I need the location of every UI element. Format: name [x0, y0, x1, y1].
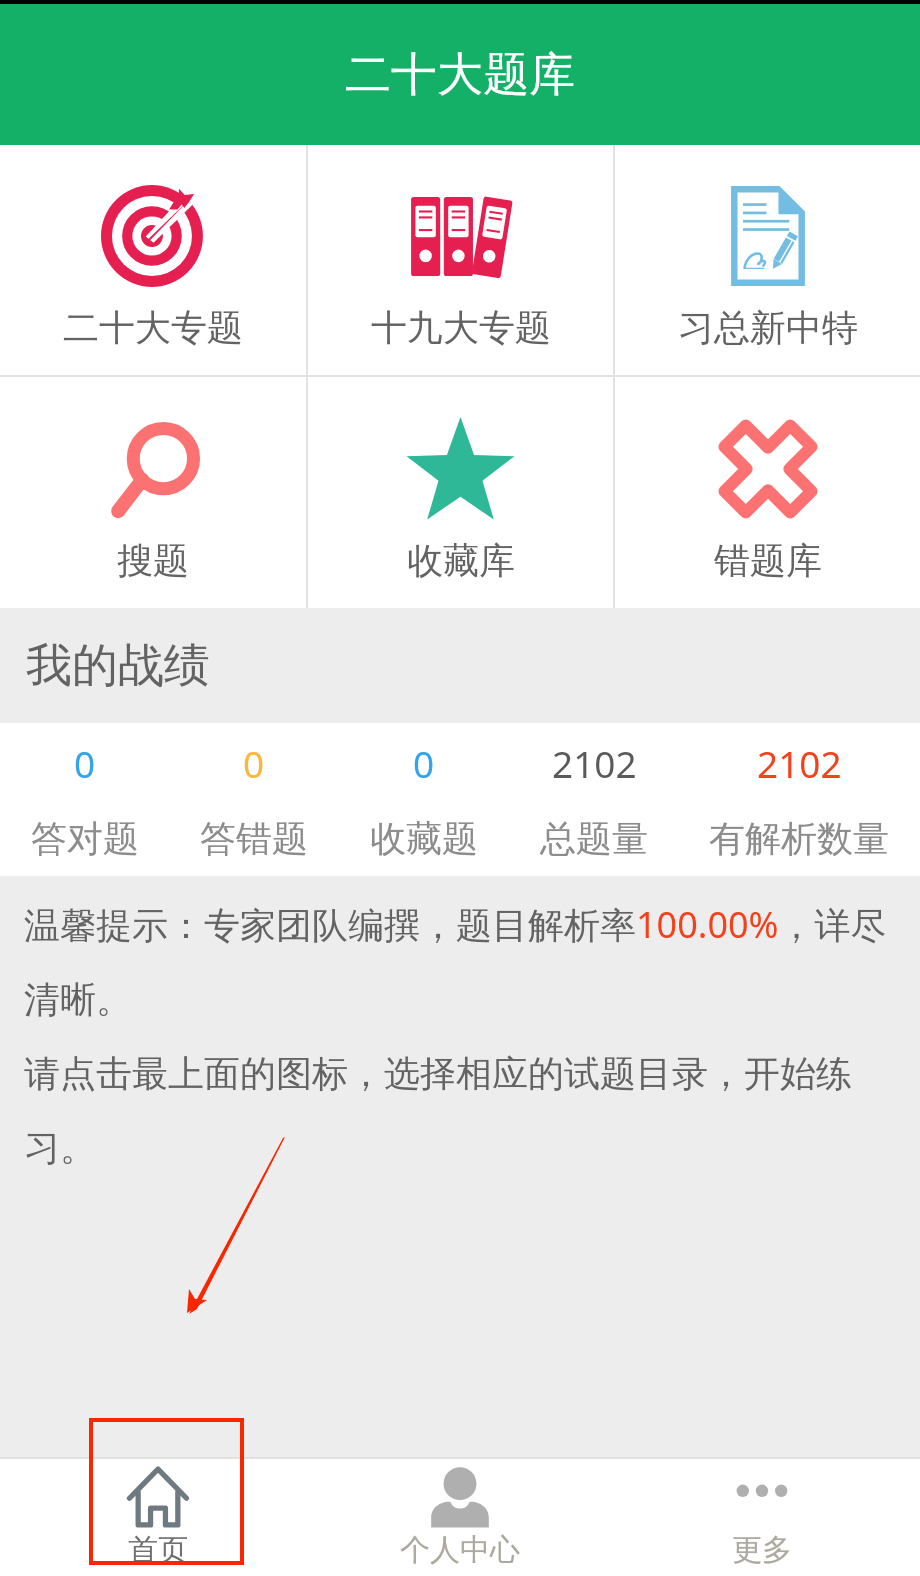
staticText: 温馨提示：专家团队编撰，题目解析率100.00%，详尽清晰。 请点击最上面的图标… [24, 900, 906, 1171]
staticText: 0 [74, 738, 96, 788]
staticText: 答对题 [31, 816, 139, 861]
button[interactable]: 更多 [608, 1459, 915, 1576]
button[interactable]: 0 [370, 723, 478, 876]
staticText: 更多 [732, 1531, 792, 1569]
staticText: 0 [413, 738, 435, 788]
button[interactable]: 搜题 [0, 377, 306, 608]
other: 更多 [731, 1466, 793, 1528]
staticText: 0 [243, 738, 265, 788]
staticText: 总题量 [540, 816, 648, 861]
button[interactable]: 习总新中特 [615, 145, 920, 375]
button[interactable]: 2102 [709, 723, 889, 876]
staticText: 习总新中特 [678, 305, 858, 350]
other: 首页 [127, 1466, 189, 1528]
button[interactable]: 错题库 [615, 377, 920, 608]
staticText: 有解析数量 [709, 816, 889, 861]
button[interactable]: 十九大专题 [308, 145, 613, 375]
staticText: 个人中心 [400, 1531, 520, 1569]
staticText: 搜题 [117, 538, 189, 583]
staticText: 2102 [552, 738, 637, 788]
other: 个人中心 [429, 1466, 491, 1528]
staticText: 答错题 [200, 816, 308, 861]
button[interactable]: 2102 [540, 723, 648, 876]
staticText: 收藏题 [370, 816, 478, 861]
button[interactable]: 0 [31, 723, 139, 876]
staticText: 收藏库 [407, 538, 515, 583]
staticText: 二十大专题 [63, 305, 243, 350]
button[interactable]: 首页 [5, 1459, 311, 1576]
staticText: 十九大专题 [371, 305, 551, 350]
staticText: 首页 [128, 1531, 188, 1569]
button[interactable]: 二十大专题 [0, 145, 306, 375]
button[interactable]: 个人中心 [306, 1459, 613, 1576]
staticText: 2102 [757, 738, 842, 788]
staticText: 二十大题库 [345, 46, 575, 104]
button[interactable]: 收藏库 [308, 377, 613, 608]
staticText: 我的战绩 [26, 637, 210, 695]
button[interactable]: 0 [200, 723, 308, 876]
staticText: 错题库 [714, 538, 822, 583]
